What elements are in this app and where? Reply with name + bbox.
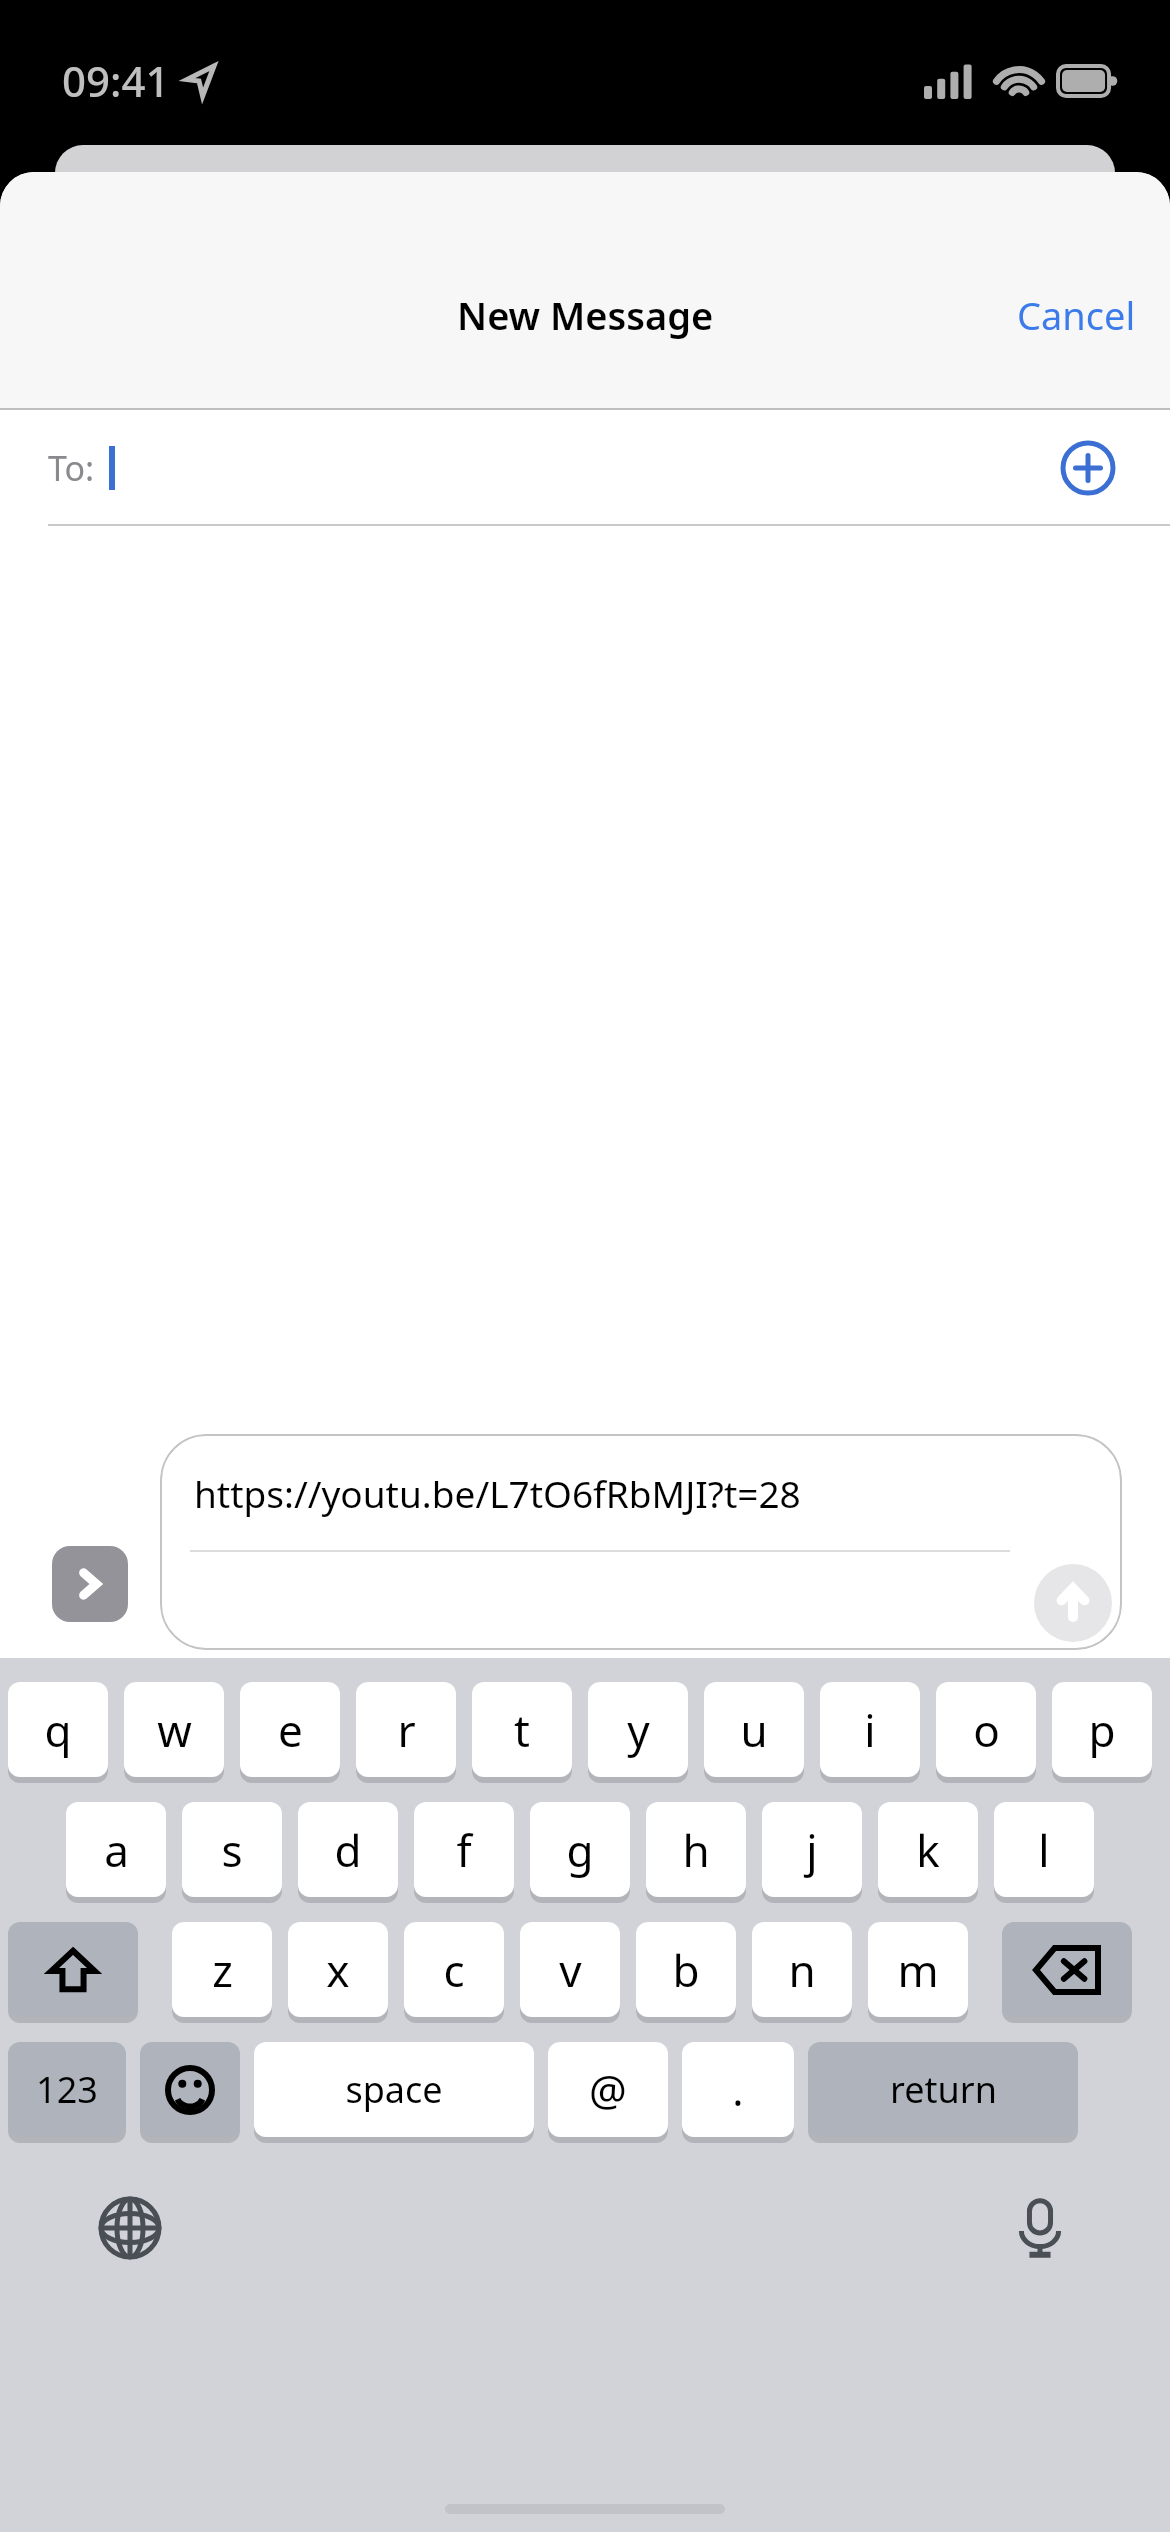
staticText: k xyxy=(916,1820,940,1880)
staticText: c xyxy=(443,1940,465,2000)
button[interactable] xyxy=(8,1922,138,2020)
staticText: j xyxy=(806,1820,818,1880)
other: Shift xyxy=(8,1922,138,2020)
staticText: i xyxy=(864,1700,876,1760)
button[interactable]: q xyxy=(8,1682,108,1780)
staticText: z xyxy=(212,1940,233,2000)
button[interactable]: f xyxy=(414,1802,514,1900)
button[interactable]: w xyxy=(124,1682,224,1780)
button[interactable]: k xyxy=(878,1802,978,1900)
button[interactable]: Change keyboard xyxy=(92,2190,168,2266)
button[interactable]: m xyxy=(868,1922,968,2020)
other: Emoji xyxy=(140,2042,240,2140)
staticText: x xyxy=(326,1940,350,2000)
staticText: . xyxy=(732,2061,744,2118)
staticText: f xyxy=(456,1820,472,1880)
staticText: m xyxy=(897,1940,939,2000)
button[interactable]: v xyxy=(520,1922,620,2020)
button[interactable]: a xyxy=(66,1802,166,1900)
button[interactable]: z xyxy=(172,1922,272,2020)
staticText: g xyxy=(566,1820,594,1880)
staticText: t xyxy=(514,1700,530,1760)
button[interactable]: Add contact xyxy=(1060,440,1116,496)
staticText: v xyxy=(559,1940,582,2000)
staticText: New Message xyxy=(457,289,714,341)
staticText: Cancel xyxy=(1017,289,1136,341)
button[interactable]: To: xyxy=(0,410,1170,526)
button[interactable]: Show apps xyxy=(52,1546,128,1622)
button[interactable]: 123 xyxy=(8,2042,126,2140)
button[interactable]: u xyxy=(704,1682,804,1780)
button[interactable]: t xyxy=(472,1682,572,1780)
button[interactable]: s xyxy=(182,1802,282,1900)
staticText: 123 xyxy=(36,2065,98,2114)
staticText: To: xyxy=(48,445,95,491)
staticText: u xyxy=(740,1700,768,1760)
button[interactable]: d xyxy=(298,1802,398,1900)
staticText: h xyxy=(682,1820,710,1880)
staticText: a xyxy=(104,1820,129,1880)
staticText: b xyxy=(672,1940,700,2000)
staticText: r xyxy=(397,1700,416,1760)
button[interactable]: g xyxy=(530,1802,630,1900)
button[interactable] xyxy=(1002,1922,1132,2020)
staticText: s xyxy=(221,1820,243,1880)
button[interactable]: r xyxy=(356,1682,456,1780)
staticText: l xyxy=(1038,1820,1050,1880)
staticText: y xyxy=(627,1700,650,1760)
staticText: e xyxy=(278,1700,303,1760)
button[interactable]: . xyxy=(682,2042,794,2140)
button[interactable]: Dictate xyxy=(1002,2190,1078,2266)
button[interactable]: i xyxy=(820,1682,920,1780)
button[interactable]: return xyxy=(808,2042,1078,2140)
button[interactable] xyxy=(140,2042,240,2140)
staticText: 09:41 xyxy=(62,52,170,109)
button[interactable]: j xyxy=(762,1802,862,1900)
button[interactable]: l xyxy=(994,1802,1094,1900)
staticText: o xyxy=(973,1700,1000,1760)
button[interactable]: p xyxy=(1052,1682,1152,1780)
button[interactable]: e xyxy=(240,1682,340,1780)
staticText: n xyxy=(788,1940,816,2000)
button[interactable]: y xyxy=(588,1682,688,1780)
button[interactable]: Cancel xyxy=(983,273,1170,357)
staticText: https://youtu.be/L7tO6fRbMJI?t=28 xyxy=(194,1468,801,1518)
staticText: w xyxy=(157,1700,192,1760)
button[interactable]: Send xyxy=(1034,1564,1112,1642)
button[interactable]: @ xyxy=(548,2042,668,2140)
button[interactable]: n xyxy=(752,1922,852,2020)
button[interactable]: h xyxy=(646,1802,746,1900)
staticText: q xyxy=(44,1700,72,1760)
staticText: space xyxy=(345,2065,443,2114)
staticText: return xyxy=(890,2065,997,2114)
button[interactable]: c xyxy=(404,1922,504,2020)
other: Backspace xyxy=(1002,1922,1132,2020)
button[interactable]: o xyxy=(936,1682,1036,1780)
staticText: @ xyxy=(589,2061,627,2118)
button[interactable]: space xyxy=(254,2042,534,2140)
staticText: p xyxy=(1088,1700,1116,1760)
staticText: d xyxy=(334,1820,362,1880)
button[interactable]: x xyxy=(288,1922,388,2020)
button[interactable]: https://youtu.be/L7tO6fRbMJI?t=28 xyxy=(160,1434,1122,1650)
button[interactable]: b xyxy=(636,1922,736,2020)
